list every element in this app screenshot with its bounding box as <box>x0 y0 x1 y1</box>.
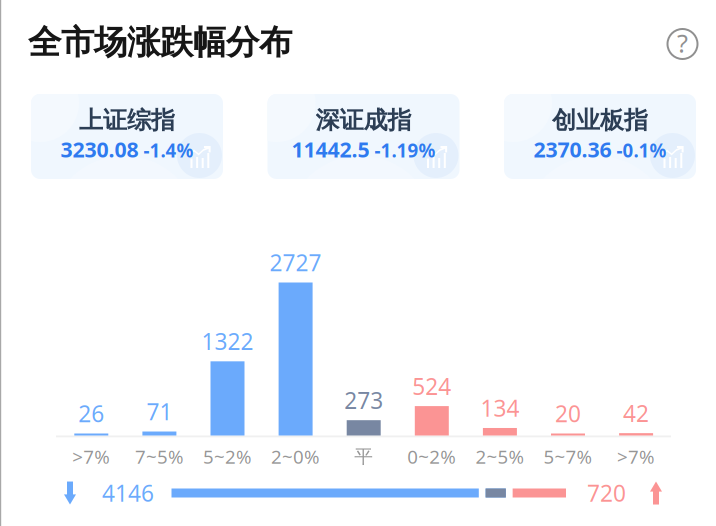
staticText: 71 <box>146 396 172 427</box>
staticText: 720 <box>587 478 626 508</box>
button[interactable]: 上证综指 <box>31 94 223 179</box>
staticText: 上证综指 <box>79 106 175 135</box>
button[interactable]: Help <box>660 22 704 66</box>
staticText: 273 <box>344 385 383 415</box>
staticText: 11442.5 <box>291 135 369 163</box>
staticText: 全市场涨跌幅分布 <box>28 22 292 63</box>
staticText: 20 <box>555 398 581 428</box>
staticText: 134 <box>480 393 519 423</box>
staticText: 2370.36 <box>533 135 611 163</box>
staticText: 5~2% <box>203 444 252 469</box>
staticText: 平 <box>354 445 373 468</box>
staticText: 0~2% <box>407 444 456 469</box>
staticText: 42 <box>623 398 649 428</box>
staticText: 1322 <box>201 326 253 356</box>
staticText: 7~5% <box>135 444 184 469</box>
button[interactable]: 深证成指 <box>267 94 459 179</box>
staticText: -1.19% <box>374 138 435 163</box>
staticText: 5~7% <box>543 444 592 469</box>
staticText: >7% <box>72 444 110 469</box>
staticText: -1.4% <box>143 138 193 163</box>
staticText: -0.1% <box>616 138 666 163</box>
staticText: 深证成指 <box>315 106 411 135</box>
staticText: ? <box>677 26 688 60</box>
staticText: 创业板指 <box>552 106 648 135</box>
staticText: 524 <box>412 371 451 401</box>
staticText: 2~0% <box>271 444 320 469</box>
staticText: 2~5% <box>475 444 524 469</box>
staticText: >7% <box>617 444 655 469</box>
staticText: 26 <box>78 398 104 428</box>
staticText: 4146 <box>102 478 154 508</box>
staticText: 3230.08 <box>60 135 138 163</box>
staticText: 2727 <box>270 247 322 277</box>
button[interactable]: 创业板指 <box>504 94 696 179</box>
